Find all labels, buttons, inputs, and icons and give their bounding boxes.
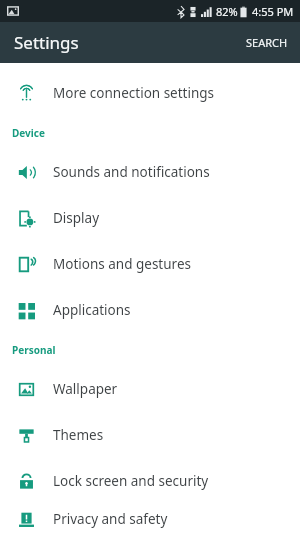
staticText: Personal — [12, 343, 56, 357]
staticText: Device — [12, 126, 45, 140]
button[interactable]: Sounds and notifications — [0, 149, 300, 195]
staticText: 4:55 PM — [252, 4, 294, 19]
button[interactable]: Lock screen and security — [0, 458, 300, 504]
button[interactable]: Wallpaper — [0, 366, 300, 412]
staticText: Sounds and notifications — [53, 163, 210, 181]
staticText: SEARCH — [246, 35, 288, 50]
button[interactable]: Applications — [0, 287, 300, 333]
staticText: Privacy and safety — [53, 510, 168, 528]
staticText: Themes — [53, 426, 104, 444]
button[interactable]: Themes — [0, 412, 300, 458]
button[interactable]: Display — [0, 195, 300, 241]
staticText: Lock screen and security — [53, 472, 209, 490]
staticText: More connection settings — [53, 84, 215, 102]
button[interactable]: More connection settings — [0, 70, 300, 116]
staticText: Motions and gestures — [53, 255, 191, 273]
button[interactable]: Privacy and safety — [0, 504, 300, 534]
staticText: Display — [53, 209, 100, 227]
button[interactable]: Motions and gestures — [0, 241, 300, 287]
button[interactable]: SEARCH — [234, 27, 300, 58]
staticText: Wallpaper — [53, 380, 118, 398]
staticText: Applications — [53, 301, 131, 319]
staticText: 82% — [216, 4, 238, 19]
staticText: Settings — [14, 31, 79, 54]
